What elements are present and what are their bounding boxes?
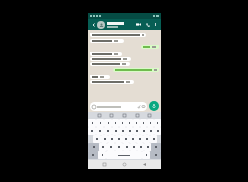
button[interactable]: Key (150, 151, 161, 159)
button[interactable] (90, 102, 147, 111)
button[interactable]: Key (101, 135, 108, 143)
button[interactable]: Key (154, 127, 161, 135)
button[interactable]: Key (99, 143, 107, 151)
button[interactable]: Key (140, 127, 147, 135)
button[interactable]: Key (129, 135, 136, 143)
button[interactable] (113, 68, 159, 72)
button[interactable]: Key (130, 143, 137, 151)
button[interactable]: Key (136, 135, 143, 143)
button[interactable]: Key (123, 143, 130, 151)
button[interactable]: Key (104, 127, 112, 135)
button[interactable] (107, 22, 134, 28)
button[interactable]: Toolbar item (109, 113, 114, 118)
button[interactable]: Key (115, 143, 123, 151)
button[interactable] (90, 62, 130, 66)
button[interactable]: Key (96, 119, 104, 127)
button[interactable]: Key (150, 135, 157, 143)
button[interactable]: Key (151, 143, 161, 151)
button[interactable]: Key (107, 143, 115, 151)
button[interactable]: Key (147, 119, 154, 127)
button[interactable]: Key (142, 151, 150, 159)
button[interactable]: Key (119, 119, 126, 127)
button[interactable]: Back (141, 161, 148, 168)
button[interactable]: Key (106, 151, 142, 159)
button[interactable]: Send voice message (149, 101, 159, 111)
button[interactable]: Key (98, 151, 106, 159)
button[interactable] (90, 39, 124, 43)
button[interactable]: Key (147, 127, 154, 135)
button[interactable]: Key (119, 127, 126, 135)
button[interactable]: Key (112, 119, 119, 127)
button[interactable]: Toolbar item (122, 113, 127, 118)
button[interactable]: Key (133, 119, 140, 127)
button[interactable]: Key (88, 127, 96, 135)
button[interactable]: Key (140, 119, 147, 127)
button[interactable]: More options (152, 21, 159, 28)
button[interactable] (90, 57, 131, 61)
button[interactable]: Key (88, 143, 99, 151)
button[interactable]: Toolbar item (135, 113, 140, 118)
button[interactable]: Voice call (143, 20, 152, 29)
button[interactable]: Toolbar item (97, 113, 102, 118)
button[interactable]: Key (104, 119, 112, 127)
button[interactable] (90, 75, 110, 79)
button[interactable]: Key (115, 135, 122, 143)
button[interactable]: Key (126, 127, 133, 135)
button[interactable]: Key (122, 135, 129, 143)
button[interactable] (90, 80, 134, 84)
button[interactable]: Key (137, 143, 144, 151)
button[interactable]: Toolbar item (147, 113, 152, 118)
button[interactable]: Key (108, 135, 115, 143)
button[interactable]: Key (126, 119, 133, 127)
button[interactable]: Home (121, 161, 128, 168)
button[interactable] (141, 45, 159, 49)
button[interactable]: Key (144, 143, 151, 151)
button[interactable]: Key (88, 119, 96, 127)
button[interactable]: Key (143, 135, 150, 143)
button[interactable]: Key (93, 135, 101, 143)
button[interactable]: Key (154, 119, 161, 127)
button[interactable]: Key (88, 151, 98, 159)
button[interactable]: Video call (134, 20, 143, 29)
button[interactable] (90, 33, 146, 37)
button[interactable] (90, 52, 122, 56)
button[interactable]: Recents (101, 161, 108, 168)
button[interactable]: Key (112, 127, 119, 135)
button[interactable]: Key (133, 127, 140, 135)
button[interactable]: Back (90, 21, 97, 28)
button[interactable]: Key (96, 127, 104, 135)
